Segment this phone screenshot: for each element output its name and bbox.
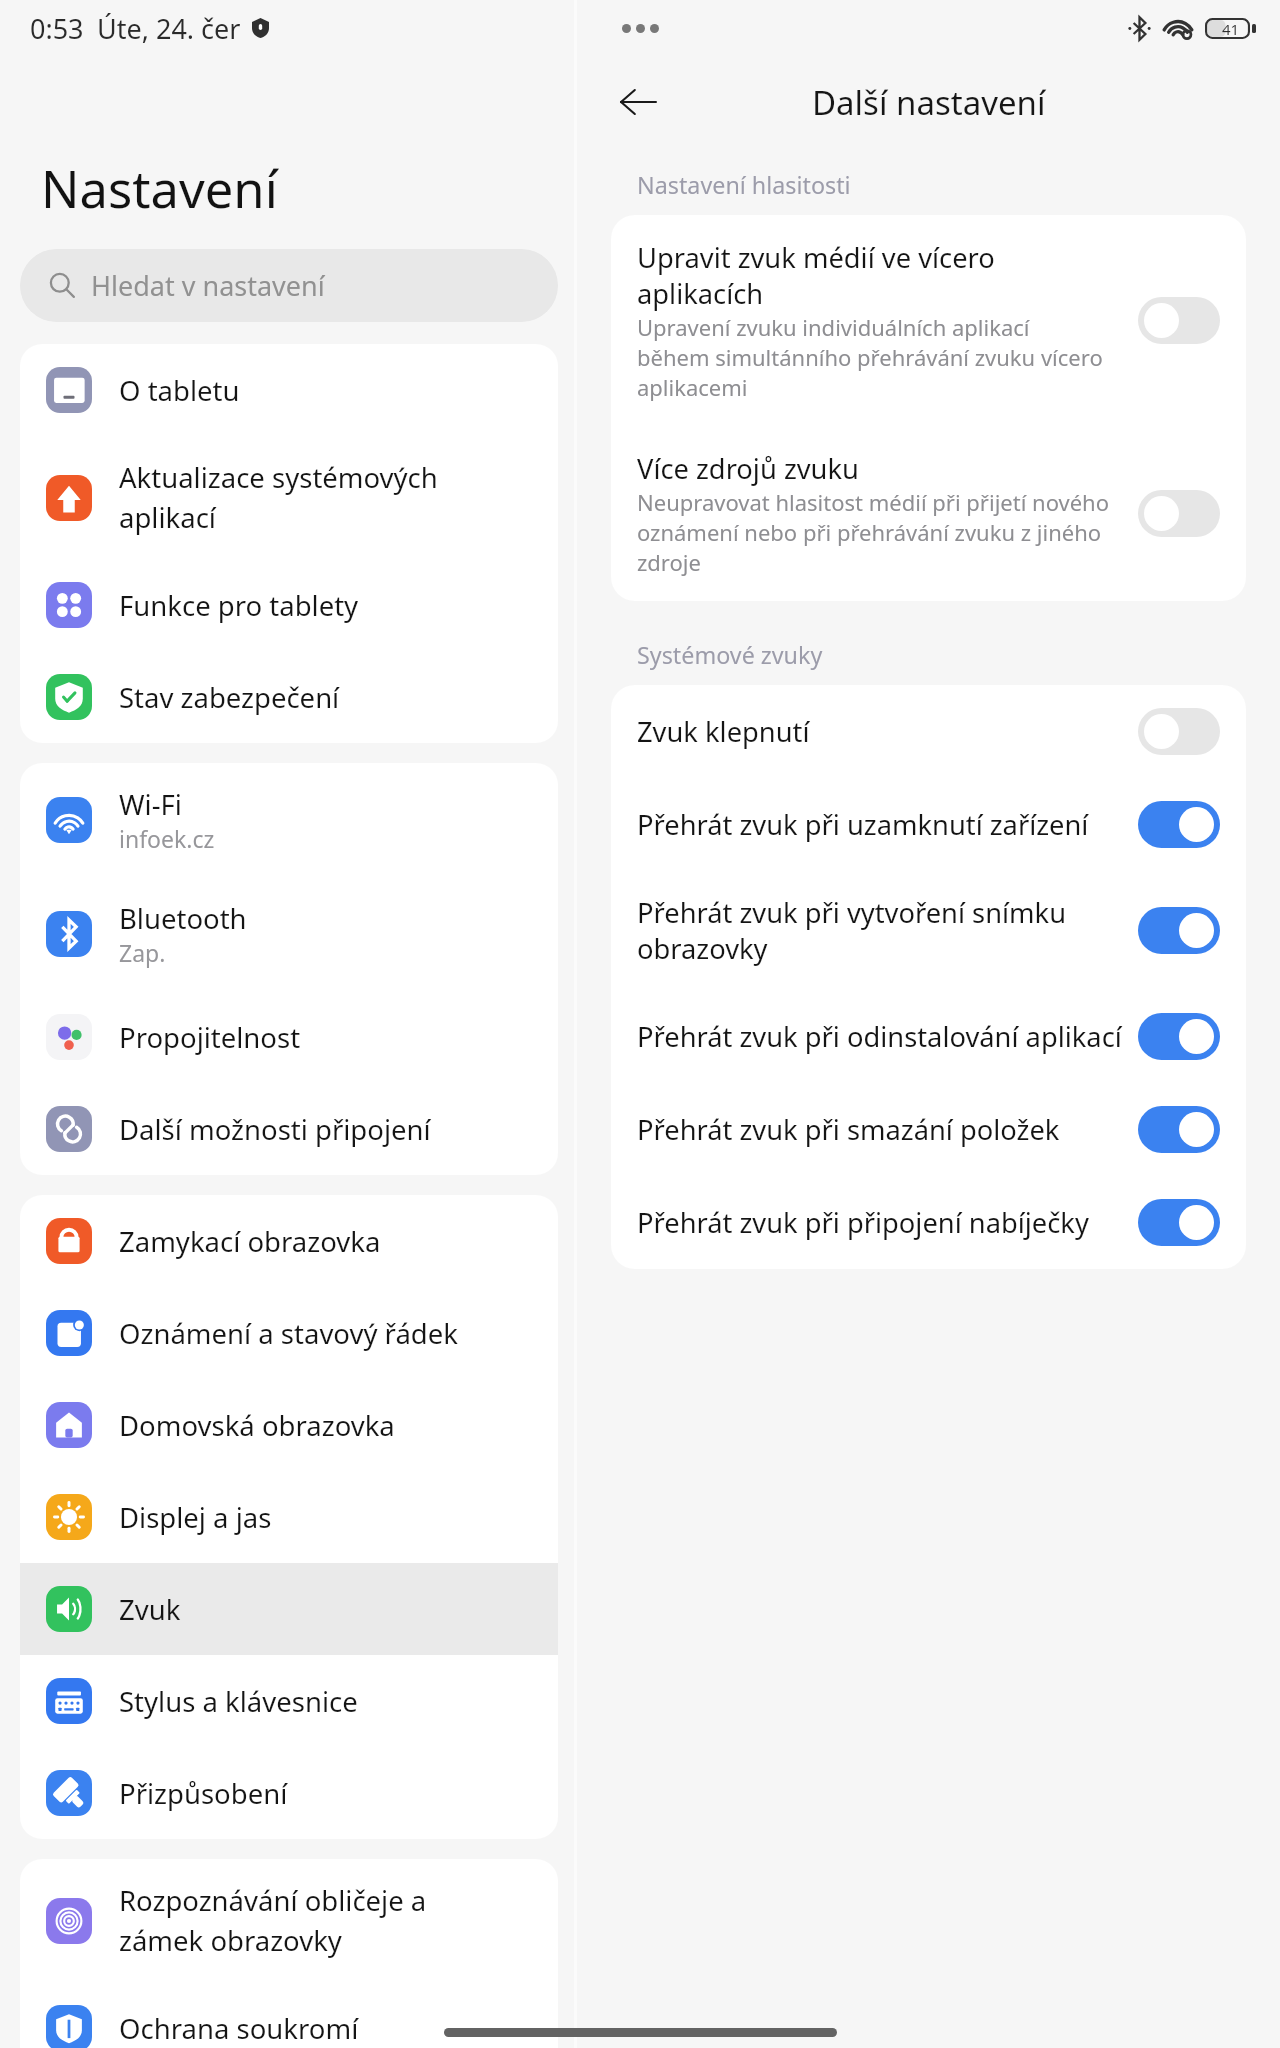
staticText: Ochrana soukromí xyxy=(119,2010,359,2047)
button[interactable]: Security status xyxy=(252,18,269,38)
button[interactable]: Propojitelnost xyxy=(20,991,558,1083)
staticText: Systémové zvuky xyxy=(637,639,823,671)
staticText: Zamykací obrazovka xyxy=(119,1223,381,1260)
staticText: Stylus a klávesnice xyxy=(119,1683,358,1720)
staticText: Bluetooth xyxy=(119,900,247,937)
button[interactable]: Domovská obrazovka xyxy=(20,1379,558,1471)
staticText: Zap. xyxy=(119,937,166,968)
button[interactable]: Více zdrojů zvuku xyxy=(611,426,1246,601)
staticText: Stav zabezpečení xyxy=(119,679,340,716)
button[interactable]: Upravit zvuk médií ve vícero aplikacích xyxy=(1138,297,1220,344)
staticText: Další možnosti připojení xyxy=(119,1111,431,1148)
button[interactable]: Zvuk klepnutí xyxy=(1138,708,1220,755)
staticText: Oznámení a stavový řádek xyxy=(119,1315,458,1352)
staticText: Zvuk klepnutí xyxy=(637,713,810,750)
button[interactable]: Přehrát zvuk při vytvoření snímku obrazo… xyxy=(1138,907,1220,954)
button[interactable]: Přehrát zvuk při odinstalování aplikací xyxy=(1138,1013,1220,1060)
staticText: Nastavení hlasitosti xyxy=(637,169,851,201)
staticText: Zvuk xyxy=(119,1591,181,1628)
button[interactable]: Přehrát zvuk při připojení nabíječky xyxy=(611,1176,1246,1269)
staticText: Funkce pro tablety xyxy=(119,587,359,624)
staticText: Upravit zvuk médií ve vícero aplikacích xyxy=(637,239,1122,312)
staticText: Wi-Fi xyxy=(119,786,182,823)
button[interactable]: Přehrát zvuk při smazání položek xyxy=(611,1083,1246,1176)
button[interactable]: Wi-Fi xyxy=(20,763,558,877)
button[interactable]: Přehrát zvuk při odinstalování aplikací xyxy=(611,990,1246,1083)
button[interactable]: Ochrana soukromí xyxy=(20,1982,558,2048)
button[interactable]: Přehrát zvuk při připojení nabíječky xyxy=(1138,1199,1220,1246)
staticText: Přizpůsobení xyxy=(119,1775,288,1812)
staticText: Propojitelnost xyxy=(119,1019,301,1056)
button[interactable]: Rozpoznávání obličeje a zámek obrazovky xyxy=(20,1859,558,1982)
button[interactable]: Přehrát zvuk při uzamknutí zařízení xyxy=(611,778,1246,871)
button[interactable]: Zamykací obrazovka xyxy=(20,1195,558,1287)
button[interactable]: Oznámení a stavový řádek xyxy=(20,1287,558,1379)
staticText: O tabletu xyxy=(119,372,240,409)
staticText: Domovská obrazovka xyxy=(119,1407,395,1444)
staticText: Displej a jas xyxy=(119,1499,272,1536)
button[interactable]: O tabletu xyxy=(20,344,558,436)
button[interactable]: Upravit zvuk médií ve vícero aplikacích xyxy=(611,215,1246,426)
button[interactable]: Stylus a klávesnice xyxy=(20,1655,558,1747)
staticText: Úte, 24. čer xyxy=(97,10,241,47)
staticText: Přehrát zvuk při smazání položek xyxy=(637,1111,1060,1148)
staticText: Aktualizace systémových aplikací xyxy=(119,459,478,536)
staticText: Upravení zvuku individuálních aplikací b… xyxy=(637,312,1103,402)
button[interactable]: More options xyxy=(622,24,659,33)
button[interactable]: Displej a jas xyxy=(20,1471,558,1563)
button[interactable]: Bluetooth xyxy=(20,877,558,991)
staticText: Přehrát zvuk při odinstalování aplikací xyxy=(637,1018,1122,1055)
staticText: 0:53 xyxy=(30,10,84,47)
staticText: infoek.cz xyxy=(119,823,215,854)
button[interactable]: Hledat v nastavení xyxy=(20,249,558,322)
button[interactable]: Stav zabezpečení xyxy=(20,651,558,743)
button[interactable]: Přizpůsobení xyxy=(20,1747,558,1839)
staticText: Přehrát zvuk při uzamknutí zařízení xyxy=(637,806,1089,843)
staticText: Další nastavení xyxy=(812,80,1046,125)
staticText: Přehrát zvuk při připojení nabíječky xyxy=(637,1204,1089,1241)
button[interactable]: Funkce pro tablety xyxy=(20,559,558,651)
staticText: Nastavení xyxy=(41,154,278,223)
staticText: Hledat v nastavení xyxy=(91,267,325,304)
button[interactable]: Více zdrojů zvuku xyxy=(1138,490,1220,537)
button[interactable]: Další možnosti připojení xyxy=(20,1083,558,1175)
staticText: Přehrát zvuk při vytvoření snímku obrazo… xyxy=(637,894,1122,967)
staticText: 41 xyxy=(1222,19,1240,39)
button[interactable]: Aktualizace systémových aplikací xyxy=(20,436,558,559)
button[interactable]: Zvuk xyxy=(20,1563,558,1655)
button[interactable]: Back xyxy=(620,89,657,115)
button[interactable]: Přehrát zvuk při smazání položek xyxy=(1138,1106,1220,1153)
staticText: Rozpoznávání obličeje a zámek obrazovky xyxy=(119,1882,478,1959)
staticText: Neupravovat hlasitost médií při přijetí … xyxy=(637,487,1110,577)
staticText: Více zdrojů zvuku xyxy=(637,450,859,487)
button[interactable]: Přehrát zvuk při uzamknutí zařízení xyxy=(1138,801,1220,848)
button[interactable]: Zvuk klepnutí xyxy=(611,685,1246,778)
button[interactable]: Přehrát zvuk při vytvoření snímku obrazo… xyxy=(611,871,1246,990)
